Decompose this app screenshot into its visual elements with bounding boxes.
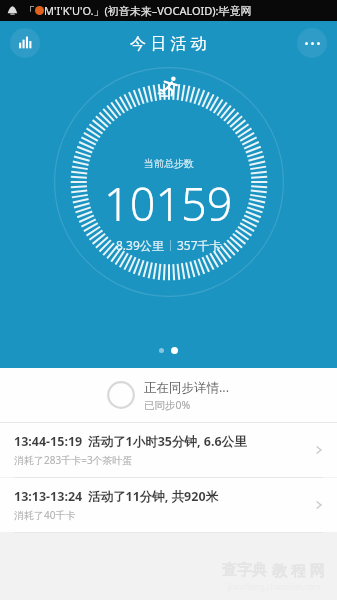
staticText: 13:13-13:24 [14, 488, 83, 505]
staticText: 今 日 活 动 [130, 32, 207, 54]
staticText: M'I'K'U'O.」(初音未来–VOCALOID):毕竟网 [44, 3, 252, 18]
staticText: 查字典 [222, 561, 267, 580]
staticText: 教 程 网 [272, 560, 325, 580]
staticText: 13:44-15:19 [14, 433, 83, 450]
staticText: 357千卡 [177, 237, 222, 253]
staticText: 活动了11分钟, 共920米 [88, 488, 219, 505]
button[interactable]: 13:13-13:24 [0, 478, 337, 532]
button[interactable]: Statistics [10, 28, 40, 58]
button[interactable] [171, 347, 178, 354]
staticText: 「 [24, 4, 35, 18]
staticText: 活动了1小时35分钟, 6.6公里 [88, 433, 247, 450]
button[interactable] [159, 348, 164, 353]
staticText: 消耗了283千卡=3个茶叶蛋 [14, 453, 133, 467]
button[interactable]: 正在同步详情... [0, 368, 337, 422]
staticText: 已同步0% [144, 398, 191, 412]
staticText: 8.39公里 [116, 237, 164, 253]
staticText: 当前总步数 [144, 157, 194, 170]
button[interactable]: 13:44-15:19 [0, 423, 337, 477]
staticText: 消耗了40千卡 [14, 508, 76, 522]
staticText: 正在同步详情... [144, 379, 230, 396]
button[interactable]: More options [297, 28, 327, 58]
staticText: 10159 [104, 173, 233, 234]
